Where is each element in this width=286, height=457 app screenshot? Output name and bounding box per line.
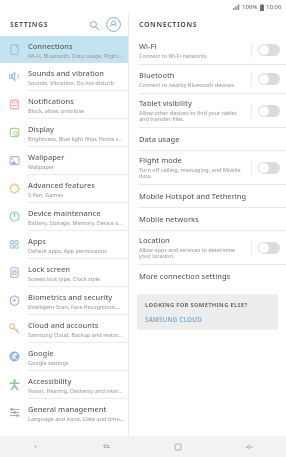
button[interactable]: Lock screen [0,259,128,286]
staticText: CONNECTIONS [139,20,198,30]
button[interactable]: LOOKING FOR SOMETHING ELSE? [137,294,278,330]
button[interactable]: Bluetooth toggle [258,73,280,85]
staticText: Wi-Fi [139,41,157,51]
button[interactable]: Accessibility [0,371,128,398]
button[interactable]: Mobile networks [129,208,286,230]
staticText: Wallpaper [28,152,65,162]
button[interactable]: Biometrics and security [0,287,128,314]
button[interactable]: Location toggle [258,242,280,254]
button[interactable]: Device maintenance [0,203,128,230]
button[interactable]: Mobile Hotspot and Tethering [129,185,286,207]
button[interactable]: Google [0,343,128,370]
staticText: Tablet visibility [139,98,192,108]
button[interactable]: Tablet visibility toggle [258,105,280,117]
button[interactable]: Home [142,436,214,457]
staticText: Samsung Cloud, Backup and restor… [28,331,123,338]
staticText: Connect to nearby Bluetooth devices. [139,81,236,88]
staticText: Screen lock type, Clock style [28,275,100,282]
staticText: Google settings [28,359,69,366]
staticText: Apps [28,236,46,246]
staticText: Connections [28,41,73,51]
staticText: Google [28,348,54,358]
button[interactable]: Display [0,119,128,146]
staticText: Language and input, Date and time,… [28,415,124,422]
button[interactable]: Connections [0,36,128,63]
button[interactable]: Flight mode toggle [258,162,280,174]
button[interactable]: Advanced features [0,175,128,202]
staticText: SETTINGS [10,20,49,30]
staticText: Turn off calling, messaging, and Mobile … [139,166,245,180]
staticText: Sounds and vibration [28,68,105,78]
staticText: Accessibility [28,376,72,386]
staticText: Notifications [28,96,74,106]
button[interactable]: Sounds and vibration [0,63,128,90]
staticText: Flight mode [139,155,182,165]
staticText: LOOKING FOR SOMETHING ELSE? [145,301,248,309]
staticText: Allow other devices to find your tablet … [139,109,245,123]
button[interactable]: Notifications [0,91,128,118]
staticText: Lock screen [28,264,71,274]
staticText: Advanced features [28,180,95,190]
staticText: SAMSUNG CLOUD [145,315,202,323]
staticText: 100% [242,3,258,11]
staticText: Vision, Hearing, Dexterity and intera… [28,387,124,394]
staticText: General management [28,404,107,414]
staticText: Device maintenance [28,208,101,218]
staticText: Default apps, App permissions [28,247,107,254]
button[interactable]: More connection settings [129,265,286,287]
staticText: 10:00 [266,3,282,11]
staticText: S Pen, Games [28,191,64,198]
button[interactable]: Flight mode [129,151,286,184]
staticText: Connect to Wi-Fi networks. [139,52,208,59]
button[interactable]: Account [105,16,122,33]
staticText: Data usage [139,134,180,144]
staticText: Mobile Hotspot and Tethering [139,191,247,201]
staticText: Display [28,124,55,134]
button[interactable]: Location [129,231,286,264]
button[interactable]: Tablet visibility [129,94,286,127]
button[interactable]: Back [214,436,286,457]
staticText: Bluetooth [139,70,175,80]
staticText: Block, allow, prioritise [28,107,85,114]
staticText: Brightness, Blue light filter, Home sc… [28,135,124,142]
button[interactable]: General management [0,399,128,426]
staticText: Biometrics and security [28,292,113,302]
staticText: Allow apps and services to determine you… [139,246,245,260]
staticText: Wi-Fi, Bluetooth, Data usage, Flight… [28,52,123,59]
staticText: Sounds, Vibration, Do not disturb [28,79,114,86]
staticText: Battery, Storage, Memory, Device se… [28,219,124,226]
staticText: More connection settings [139,271,231,281]
button[interactable]: Search [86,17,102,33]
staticText: Location [139,235,170,245]
button[interactable]: Recents [71,436,142,457]
button[interactable]: Cloud and accounts [0,315,128,342]
staticText: Intelligent Scan, Face Recognition,… [28,303,121,310]
staticText: Mobile networks [139,214,199,224]
button[interactable]: Wi-Fi [129,36,286,64]
button[interactable]: Apps [0,231,128,258]
button[interactable]: Bluetooth [129,65,286,93]
staticText: Cloud and accounts [28,320,99,330]
button[interactable]: Wi-Fi toggle [258,44,280,56]
staticText: Wallpaper [28,163,55,170]
button[interactable]: Data usage [129,128,286,150]
button[interactable]: Wallpaper [0,147,128,174]
